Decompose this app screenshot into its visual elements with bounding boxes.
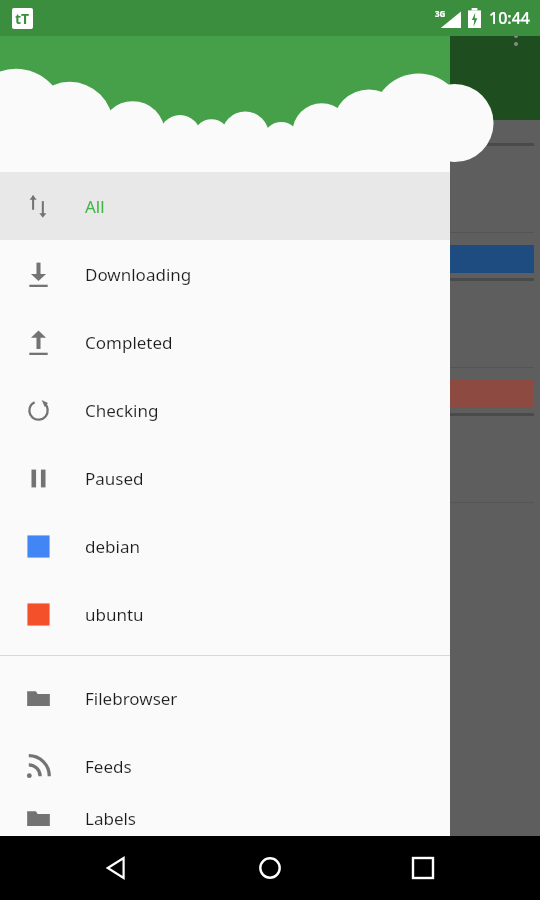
staticText: 3G (435, 8, 446, 19)
staticText: Downloading (85, 263, 192, 286)
button[interactable]: All (0, 172, 450, 240)
button[interactable]: ers: 0/41 (6, 120, 534, 233)
staticText: wn: 0 B/s (6, 177, 70, 197)
staticText: Completed (85, 331, 173, 354)
staticText: Labels (85, 807, 137, 830)
staticText: aded: 0 B (6, 472, 72, 492)
staticText: debian (10, 248, 62, 270)
button[interactable]: Feeds (0, 732, 450, 800)
staticText: aded: 0 B (6, 337, 72, 357)
button[interactable]: Downloading (0, 240, 450, 308)
button[interactable]: ubuntu (0, 580, 450, 648)
staticText: 10:44 (489, 7, 530, 29)
button[interactable]: More options (514, 26, 518, 46)
button[interactable]: Filebrowser (0, 664, 450, 732)
button[interactable]: Labels (0, 800, 450, 836)
button[interactable]: Back (81, 836, 153, 900)
button[interactable]: Checking (0, 376, 450, 444)
button[interactable]: debian (6, 233, 534, 368)
staticText: debian (85, 535, 140, 558)
staticText: Feeds (85, 755, 132, 778)
button[interactable]: Completed (0, 308, 450, 376)
staticText: Filebrowser (85, 687, 178, 710)
button[interactable]: Recent apps (387, 836, 459, 900)
staticText: 767.7 MB (6, 84, 76, 106)
staticText: ubuntu (85, 603, 144, 626)
staticText: tT (15, 9, 30, 28)
staticText: Checking (85, 399, 159, 422)
staticText: Paused (85, 467, 144, 490)
button[interactable]: Paused (0, 444, 450, 512)
button[interactable]: debian (0, 512, 450, 580)
button[interactable]: Home (234, 836, 306, 900)
staticText: ubuntu (10, 383, 66, 405)
button[interactable]: ubuntu (6, 368, 534, 503)
staticText: aded: 0 B (6, 202, 72, 222)
staticText: 66.0 kB/s (6, 312, 71, 332)
staticText: All (85, 195, 105, 218)
